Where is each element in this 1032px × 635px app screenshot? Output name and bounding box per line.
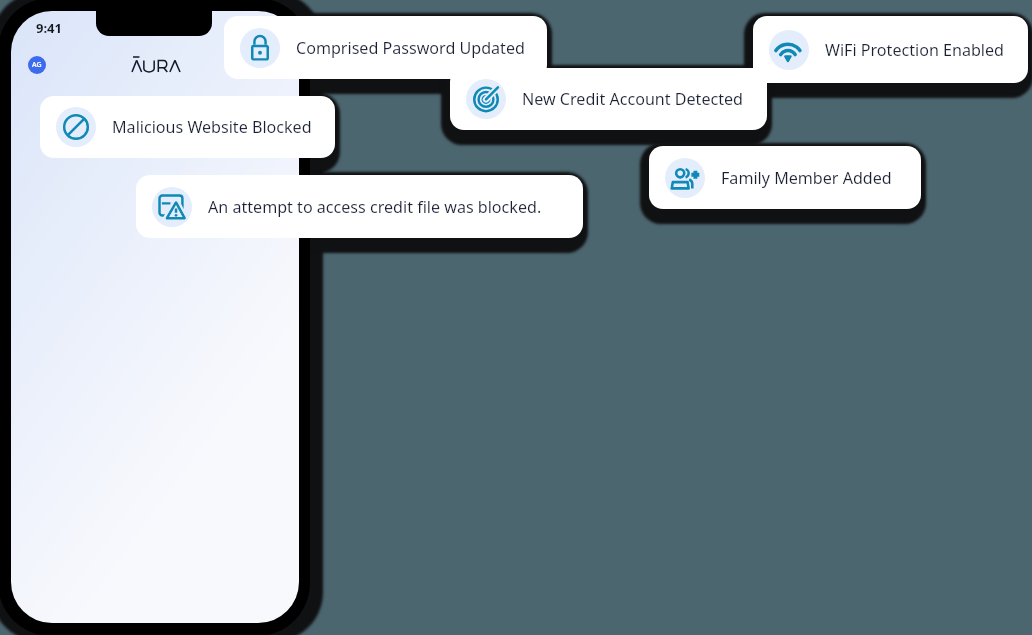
staticText: Family Member Added (721, 167, 892, 189)
button[interactable]: Family Member Added (649, 146, 921, 209)
staticText: Malicious Website Blocked (112, 116, 312, 138)
button[interactable]: Account (28, 56, 46, 74)
button[interactable]: An attempt to access credit file was blo… (136, 175, 583, 238)
staticText: WiFi Protection Enabled (825, 39, 1004, 61)
staticText: An attempt to access credit file was blo… (208, 196, 542, 218)
button[interactable]: Comprised Password Updated (224, 16, 547, 79)
staticText: 9:41 (36, 19, 62, 37)
button[interactable]: New Credit Account Detected (450, 68, 767, 130)
staticText: Comprised Password Updated (296, 37, 525, 59)
staticText: AG (32, 60, 42, 70)
button[interactable]: Malicious Website Blocked (40, 96, 335, 158)
staticText: New Credit Account Detected (522, 88, 744, 110)
button[interactable]: WiFi Protection Enabled (753, 16, 1028, 83)
